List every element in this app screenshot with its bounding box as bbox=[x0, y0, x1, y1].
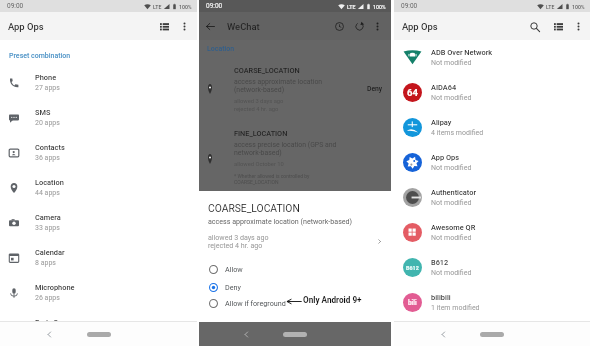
button[interactable]: Back bbox=[436, 327, 451, 342]
button[interactable]: Search bbox=[526, 18, 543, 35]
staticText: Body Sensors bbox=[35, 318, 81, 327]
staticText: Location bbox=[207, 45, 235, 53]
button[interactable]: Camera bbox=[0, 205, 197, 240]
button[interactable]: Calendar bbox=[0, 240, 197, 275]
staticText: LTE bbox=[153, 4, 162, 10]
staticText: 100% bbox=[572, 4, 585, 10]
staticText: Deny bbox=[225, 283, 241, 291]
button[interactable]: ADB Over Network bbox=[394, 40, 590, 75]
button[interactable]: Home bbox=[87, 332, 111, 337]
staticText: Not modified bbox=[431, 199, 472, 207]
staticText: 12 apps bbox=[35, 329, 60, 337]
staticText: access precise location (GPS and network… bbox=[234, 141, 337, 157]
staticText: 100% bbox=[373, 4, 386, 10]
button[interactable]: SMS bbox=[0, 100, 197, 135]
button[interactable]: Back bbox=[239, 327, 254, 342]
staticText: 100% bbox=[179, 4, 192, 10]
staticText: Authenticator bbox=[431, 188, 477, 197]
button[interactable]: Phone bbox=[0, 65, 197, 100]
button[interactable]: Refresh bbox=[351, 18, 367, 34]
staticText: App Ops bbox=[431, 153, 459, 162]
staticText: LTE bbox=[546, 4, 555, 10]
staticText: ADB Over Network bbox=[431, 48, 493, 57]
button[interactable]: Deny bbox=[199, 279, 391, 295]
staticText: Contacts bbox=[35, 143, 65, 152]
staticText: bilibili bbox=[431, 293, 451, 302]
button[interactable]: Microphone bbox=[0, 275, 197, 310]
staticText: Calendar bbox=[35, 248, 65, 257]
staticText: allowed 3 days ago rejected 4 hr. ago bbox=[234, 98, 284, 112]
staticText: access approximate location (network-bas… bbox=[208, 217, 353, 225]
staticText: AIDA64 bbox=[431, 83, 457, 92]
staticText: 8 apps bbox=[35, 259, 56, 267]
staticText: SMS bbox=[35, 108, 51, 117]
button[interactable]: Allow if foreground bbox=[199, 295, 391, 311]
staticText: Deny bbox=[367, 85, 383, 93]
button[interactable]: COARSE_LOCATION bbox=[199, 191, 391, 249]
staticText: Not modified bbox=[431, 164, 472, 172]
staticText: 33 apps bbox=[35, 224, 60, 232]
staticText: B612 bbox=[431, 258, 449, 267]
button[interactable]: List view bbox=[550, 18, 567, 35]
button[interactable]: Location bbox=[0, 170, 197, 205]
staticText: Not modified bbox=[431, 269, 472, 277]
staticText: 44 apps bbox=[35, 189, 60, 197]
button[interactable]: More options bbox=[571, 19, 586, 34]
staticText: LTE bbox=[347, 4, 356, 10]
button[interactable]: Home bbox=[283, 332, 307, 337]
staticText: COARSE_LOCATION bbox=[234, 66, 300, 75]
staticText: COARSE_LOCATION bbox=[208, 202, 300, 214]
button[interactable]: Authenticator bbox=[394, 180, 590, 215]
staticText: 20 apps bbox=[35, 119, 60, 127]
button[interactable]: List view bbox=[155, 17, 173, 35]
staticText: access approximate location (network-bas… bbox=[234, 78, 323, 94]
button[interactable]: Contacts bbox=[0, 135, 197, 170]
staticText: 26 apps bbox=[35, 294, 60, 302]
button[interactable]: 64 bbox=[394, 75, 590, 110]
staticText: Allow bbox=[225, 265, 243, 273]
button[interactable]: More options bbox=[176, 18, 193, 35]
staticText: 09:00 bbox=[401, 2, 418, 10]
staticText: B612 bbox=[406, 265, 419, 271]
staticText: Microphone bbox=[35, 283, 75, 292]
button[interactable]: B612 bbox=[394, 250, 590, 285]
staticText: 36 apps bbox=[35, 154, 60, 162]
button[interactable]: Alipay bbox=[394, 110, 590, 145]
staticText: WeChat bbox=[227, 21, 260, 32]
staticText: * Whether allowed is controlled by COARS… bbox=[234, 173, 310, 185]
staticText: 64 bbox=[407, 87, 418, 98]
button[interactable]: Back bbox=[202, 18, 219, 35]
button[interactable]: More options bbox=[370, 19, 385, 34]
button[interactable]: bili bbox=[394, 285, 590, 320]
staticText: 4 items modified bbox=[431, 129, 484, 137]
button[interactable]: Home bbox=[480, 332, 504, 337]
button[interactable]: History bbox=[331, 18, 347, 34]
staticText: Alipay bbox=[431, 118, 452, 127]
button[interactable]: Awesome QR bbox=[394, 215, 590, 250]
staticText: Only Android 9+ bbox=[303, 295, 362, 305]
staticText: Camera bbox=[35, 213, 61, 222]
staticText: 09:00 bbox=[206, 2, 223, 10]
staticText: Not modified bbox=[431, 234, 472, 242]
staticText: allowed 3 days ago rejected 4 hr. ago bbox=[208, 233, 269, 250]
button[interactable]: Body Sensors bbox=[0, 310, 197, 345]
staticText: Phone bbox=[35, 73, 57, 82]
staticText: bili bbox=[408, 299, 417, 307]
staticText: Not modified bbox=[431, 94, 472, 102]
staticText: App Ops bbox=[8, 21, 44, 32]
staticText: 09:00 bbox=[7, 2, 24, 10]
staticText: Location bbox=[35, 178, 64, 187]
staticText: Allow if foreground bbox=[225, 299, 286, 307]
staticText: App Ops bbox=[402, 21, 438, 32]
staticText: allowed October 10 bbox=[234, 161, 284, 168]
button[interactable]: Preset combination bbox=[9, 52, 71, 60]
staticText: Awesome QR bbox=[431, 223, 476, 232]
staticText: 1 item modified bbox=[431, 304, 480, 312]
staticText: 27 apps bbox=[35, 84, 60, 92]
button[interactable]: Allow bbox=[199, 261, 391, 277]
staticText: Not modified bbox=[431, 59, 472, 67]
button[interactable]: App Ops bbox=[394, 145, 590, 180]
button[interactable]: Back bbox=[42, 327, 57, 342]
staticText: FINE_LOCATION bbox=[234, 129, 288, 138]
